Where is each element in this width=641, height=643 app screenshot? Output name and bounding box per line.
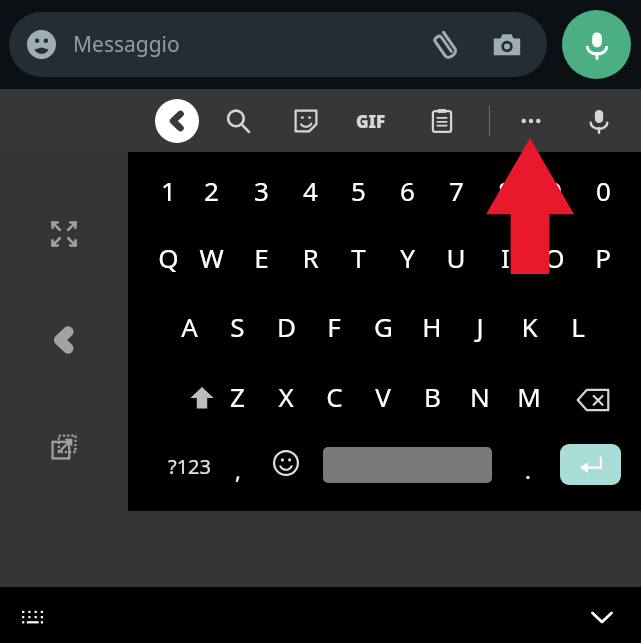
staticText: ?123 bbox=[168, 453, 211, 480]
staticText: I bbox=[501, 240, 510, 275]
button[interactable]: V bbox=[359, 374, 407, 418]
button[interactable]: Expand bbox=[42, 212, 86, 256]
staticText: Z bbox=[230, 379, 245, 414]
button[interactable]: A bbox=[165, 304, 213, 348]
button[interactable]: Search bbox=[216, 99, 260, 143]
staticText: 0 bbox=[596, 173, 611, 208]
button[interactable]: P bbox=[579, 235, 627, 279]
button[interactable]: Camera bbox=[483, 21, 531, 69]
button[interactable]: Back bbox=[42, 318, 86, 362]
button[interactable]: E bbox=[237, 235, 285, 279]
button[interactable]: S bbox=[213, 304, 261, 348]
staticText: M bbox=[517, 379, 541, 414]
button[interactable]: Attach bbox=[421, 21, 469, 69]
button[interactable]: D bbox=[262, 304, 310, 348]
button[interactable]: Emoji bbox=[264, 441, 308, 485]
staticText: G bbox=[374, 309, 393, 344]
staticText: Q bbox=[158, 240, 179, 275]
button[interactable]: I bbox=[481, 235, 529, 279]
button[interactable]: 5 bbox=[334, 168, 382, 212]
button[interactable]: GIF bbox=[349, 99, 393, 143]
staticText: 7 bbox=[449, 173, 464, 208]
staticText: D bbox=[277, 309, 296, 344]
button[interactable]: W bbox=[187, 235, 235, 279]
button[interactable]: 3 bbox=[237, 168, 285, 212]
staticText: 8 bbox=[498, 173, 513, 208]
staticText: T bbox=[351, 240, 366, 275]
staticText: K bbox=[521, 309, 538, 344]
staticText: P bbox=[595, 240, 611, 275]
button[interactable]: Space bbox=[323, 447, 492, 483]
button[interactable]: L bbox=[554, 304, 602, 348]
staticText: 3 bbox=[254, 173, 269, 208]
staticText: E bbox=[254, 240, 269, 275]
staticText: N bbox=[470, 379, 490, 414]
button[interactable]: 0 bbox=[579, 168, 627, 212]
button[interactable]: Q bbox=[144, 235, 192, 279]
button[interactable]: 9 bbox=[530, 168, 578, 212]
button[interactable]: Shift bbox=[178, 374, 226, 422]
staticText: J bbox=[476, 309, 484, 344]
button[interactable]: Enter bbox=[560, 444, 621, 485]
button[interactable]: More options bbox=[509, 99, 553, 143]
staticText: 1 bbox=[161, 173, 176, 208]
button[interactable]: Y bbox=[383, 235, 431, 279]
staticText: 6 bbox=[400, 173, 415, 208]
button[interactable]: 6 bbox=[383, 168, 431, 212]
button[interactable]: Hide keyboard bbox=[583, 598, 621, 636]
button[interactable]: Clipboard bbox=[420, 99, 464, 143]
staticText: 4 bbox=[303, 173, 318, 208]
button[interactable]: Z bbox=[213, 374, 261, 418]
staticText: S bbox=[230, 309, 245, 344]
button[interactable]: H bbox=[408, 304, 456, 348]
button[interactable]: Voice input bbox=[577, 99, 621, 143]
button[interactable]: Voice message bbox=[562, 10, 631, 79]
button[interactable]: T bbox=[334, 235, 382, 279]
button[interactable]: R bbox=[286, 235, 334, 279]
staticText: . bbox=[525, 455, 531, 485]
button[interactable]: M bbox=[505, 374, 553, 418]
button[interactable]: Messaggio bbox=[9, 12, 547, 77]
staticText: , bbox=[235, 455, 241, 485]
staticText: 5 bbox=[351, 173, 366, 208]
staticText: R bbox=[302, 240, 319, 275]
button[interactable]: 2 bbox=[187, 168, 235, 212]
button[interactable]: 8 bbox=[481, 168, 529, 212]
button[interactable]: K bbox=[505, 304, 553, 348]
staticText: A bbox=[181, 309, 198, 344]
button[interactable]: Stickers bbox=[284, 99, 328, 143]
button[interactable]: N bbox=[456, 374, 504, 418]
staticText: 2 bbox=[204, 173, 219, 208]
staticText: 9 bbox=[547, 173, 562, 208]
staticText: C bbox=[326, 379, 343, 414]
button[interactable]: U bbox=[432, 235, 480, 279]
staticText: O bbox=[544, 240, 565, 275]
staticText: X bbox=[278, 379, 294, 414]
staticText: GIF bbox=[356, 110, 386, 133]
button[interactable]: 1 bbox=[144, 168, 192, 212]
staticText: Y bbox=[400, 240, 415, 275]
staticText: F bbox=[327, 309, 341, 344]
button[interactable]: 7 bbox=[432, 168, 480, 212]
button[interactable]: , bbox=[214, 448, 262, 492]
button[interactable]: F bbox=[310, 304, 358, 348]
staticText: L bbox=[571, 309, 585, 344]
staticText: W bbox=[199, 240, 224, 275]
button[interactable]: J bbox=[456, 304, 504, 348]
staticText: V bbox=[375, 379, 391, 414]
button[interactable]: Open in new bbox=[42, 425, 86, 469]
button[interactable]: Keyboard bbox=[16, 599, 50, 633]
button[interactable]: C bbox=[310, 374, 358, 418]
button[interactable]: O bbox=[530, 235, 578, 279]
button[interactable]: X bbox=[262, 374, 310, 418]
button[interactable]: . bbox=[504, 448, 552, 492]
button[interactable]: Backspace bbox=[567, 374, 619, 426]
staticText: Messaggio bbox=[73, 30, 180, 59]
button[interactable]: G bbox=[359, 304, 407, 348]
button[interactable]: Back bbox=[155, 99, 199, 143]
button[interactable]: B bbox=[408, 374, 456, 418]
staticText: U bbox=[446, 240, 466, 275]
staticText: B bbox=[424, 379, 441, 414]
button[interactable]: 4 bbox=[286, 168, 334, 212]
button[interactable]: ?123 bbox=[154, 442, 224, 490]
